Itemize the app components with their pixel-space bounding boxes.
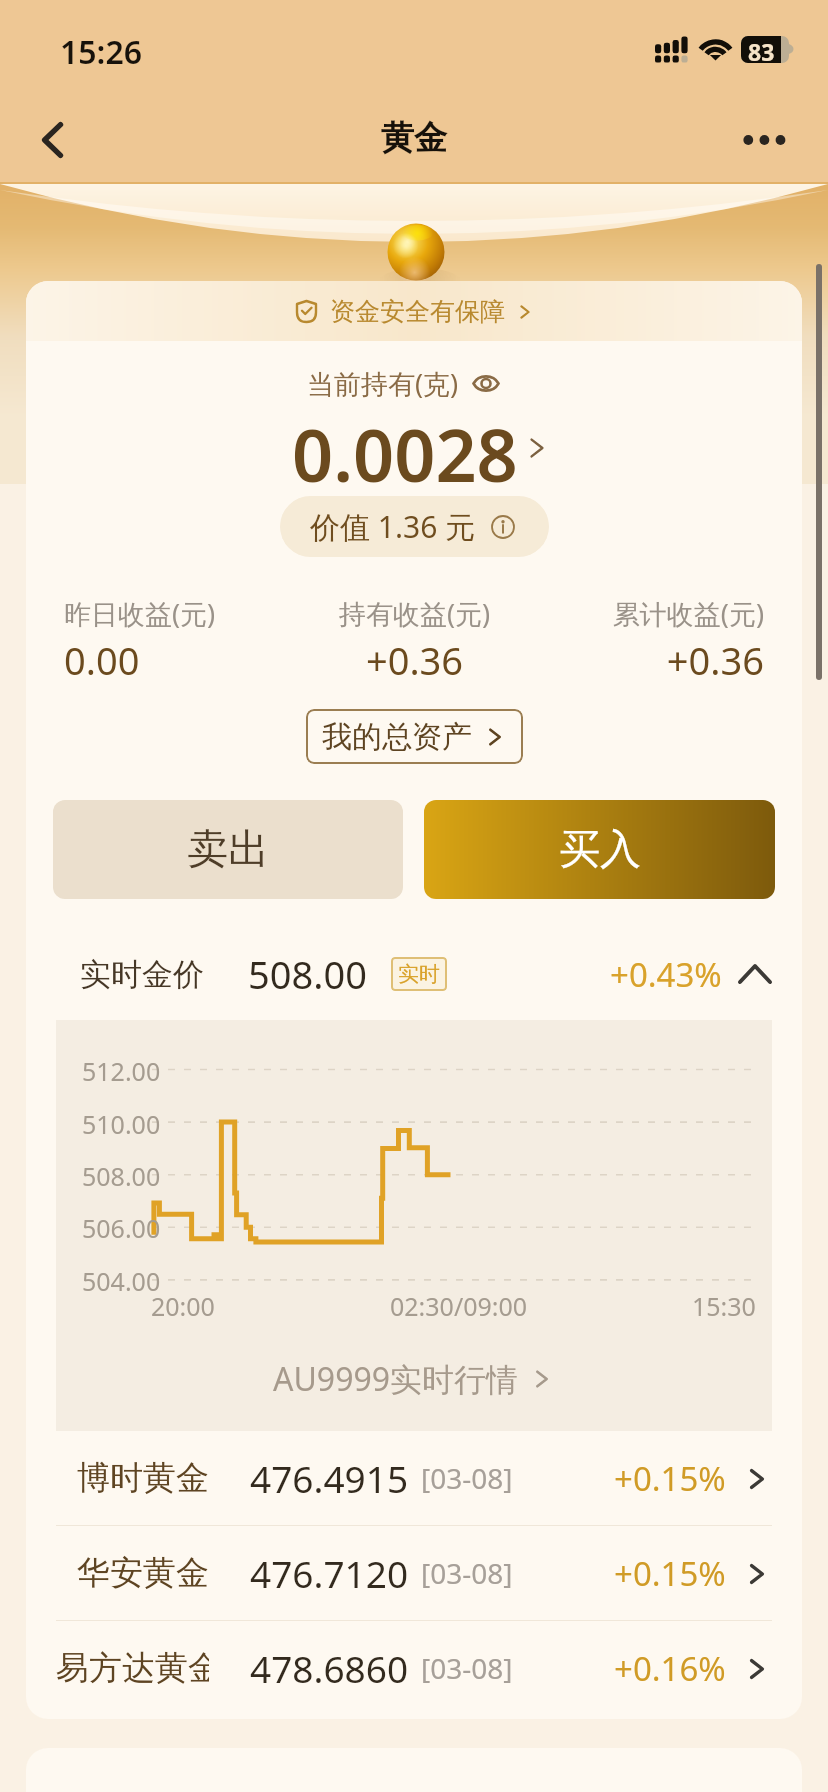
staticText: 价值 1.36 元: [310, 506, 476, 547]
button[interactable]: 博时黄金: [56, 1431, 772, 1525]
staticText: 华安黄金: [77, 1552, 209, 1594]
staticText: 实时: [398, 961, 440, 987]
staticText: 508.00: [248, 948, 367, 1000]
button[interactable]: 卖出: [53, 800, 403, 899]
staticText: 504.00: [82, 1264, 161, 1298]
staticText: 昨日收益(元): [64, 595, 298, 632]
staticText: 508.00: [82, 1159, 161, 1193]
staticText: 83: [748, 36, 775, 63]
staticText: 15:30: [692, 1289, 756, 1323]
staticText: 02:30/09:00: [390, 1289, 528, 1323]
staticText: 506.00: [82, 1211, 161, 1245]
staticText: 15:26: [60, 30, 143, 74]
staticText: 0.00: [64, 634, 298, 686]
staticText: 资金安全有保障: [330, 296, 505, 327]
staticText: 当前持有(克): [307, 365, 459, 402]
staticText: +0.36: [531, 634, 764, 686]
staticText: +0.16%: [614, 1646, 726, 1691]
button[interactable]: More options: [730, 110, 800, 170]
staticText: 478.6860: [250, 1643, 409, 1693]
button[interactable]: 我的总资产: [306, 709, 523, 764]
button[interactable]: AU9999实时行情: [273, 1357, 555, 1401]
staticText: 476.7120: [250, 1548, 409, 1598]
staticText: 512.00: [82, 1054, 161, 1088]
staticText: 博时黄金: [77, 1457, 209, 1499]
staticText: 买入: [559, 824, 641, 876]
staticText: [03-08]: [421, 1649, 513, 1687]
staticText: 卖出: [187, 824, 269, 876]
staticText: 0.0028: [292, 405, 518, 491]
staticText: 我的总资产: [322, 718, 472, 756]
staticText: 累计收益(元): [531, 595, 764, 632]
button[interactable]: 买入: [424, 800, 775, 899]
button[interactable]: Back: [20, 100, 84, 180]
staticText: AU9999实时行情: [273, 1357, 519, 1401]
staticText: [03-08]: [421, 1554, 513, 1592]
staticText: +0.43%: [610, 952, 722, 997]
staticText: 持有收益(元): [298, 595, 531, 632]
staticText: 20:00: [151, 1289, 215, 1323]
button[interactable]: 易方达黄金: [56, 1621, 772, 1715]
button[interactable]: 实时金价: [26, 948, 802, 1000]
staticText: 实时金价: [80, 955, 204, 994]
staticText: +0.15%: [614, 1456, 726, 1501]
staticText: 黄金: [381, 117, 447, 159]
button[interactable]: 华安黄金: [56, 1526, 772, 1620]
staticText: +0.15%: [614, 1551, 726, 1596]
button[interactable]: 资金安全有保障: [294, 296, 535, 327]
button[interactable]: 价值 1.36 元: [280, 496, 549, 557]
staticText: [03-08]: [421, 1459, 513, 1497]
staticText: 易方达黄金: [56, 1647, 209, 1689]
staticText: 476.4915: [250, 1453, 409, 1503]
staticText: 510.00: [82, 1107, 161, 1141]
staticText: +0.36: [298, 634, 531, 686]
